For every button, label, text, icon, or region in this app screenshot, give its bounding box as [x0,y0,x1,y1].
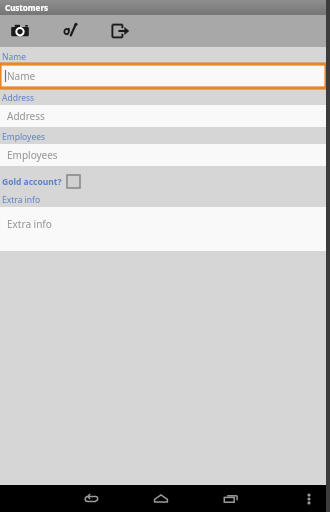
button[interactable]: Home [146,485,176,512]
staticText: Customers [5,2,48,13]
button[interactable]: Export [104,15,136,47]
button[interactable]: More options [294,485,324,512]
staticText: Extra info [2,194,41,206]
button[interactable]: Gold account? [2,175,80,188]
staticText: Address [7,109,45,123]
staticText: Employees [2,131,46,143]
button[interactable]: Take photo [4,15,36,47]
staticText: Extra info [7,217,52,231]
button[interactable]: Back [76,485,106,512]
button[interactable]: Recent apps [216,485,246,512]
button[interactable]: Employees [0,144,326,166]
button[interactable]: Address [0,105,326,127]
staticText: Name [7,69,36,83]
staticText: Name [2,51,26,63]
staticText: Employees [7,148,58,162]
button[interactable]: Extra info [0,207,326,251]
staticText: Gold account? [2,176,62,188]
button[interactable]: Signature [54,15,86,47]
staticText: Address [2,92,35,104]
button[interactable]: Name [0,64,326,88]
